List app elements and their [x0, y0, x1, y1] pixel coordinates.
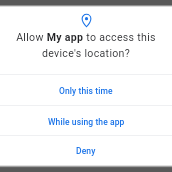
staticText: device's location? — [0, 47, 172, 59]
staticText: While using the app — [48, 117, 125, 127]
button[interactable]: Deny — [0, 136, 172, 166]
staticText: Allow My app to access this — [0, 31, 172, 43]
staticText: Deny — [76, 146, 96, 156]
button[interactable]: While using the app — [0, 106, 172, 135]
staticText: Only this time — [59, 86, 113, 96]
button[interactable]: Only this time — [0, 75, 172, 105]
